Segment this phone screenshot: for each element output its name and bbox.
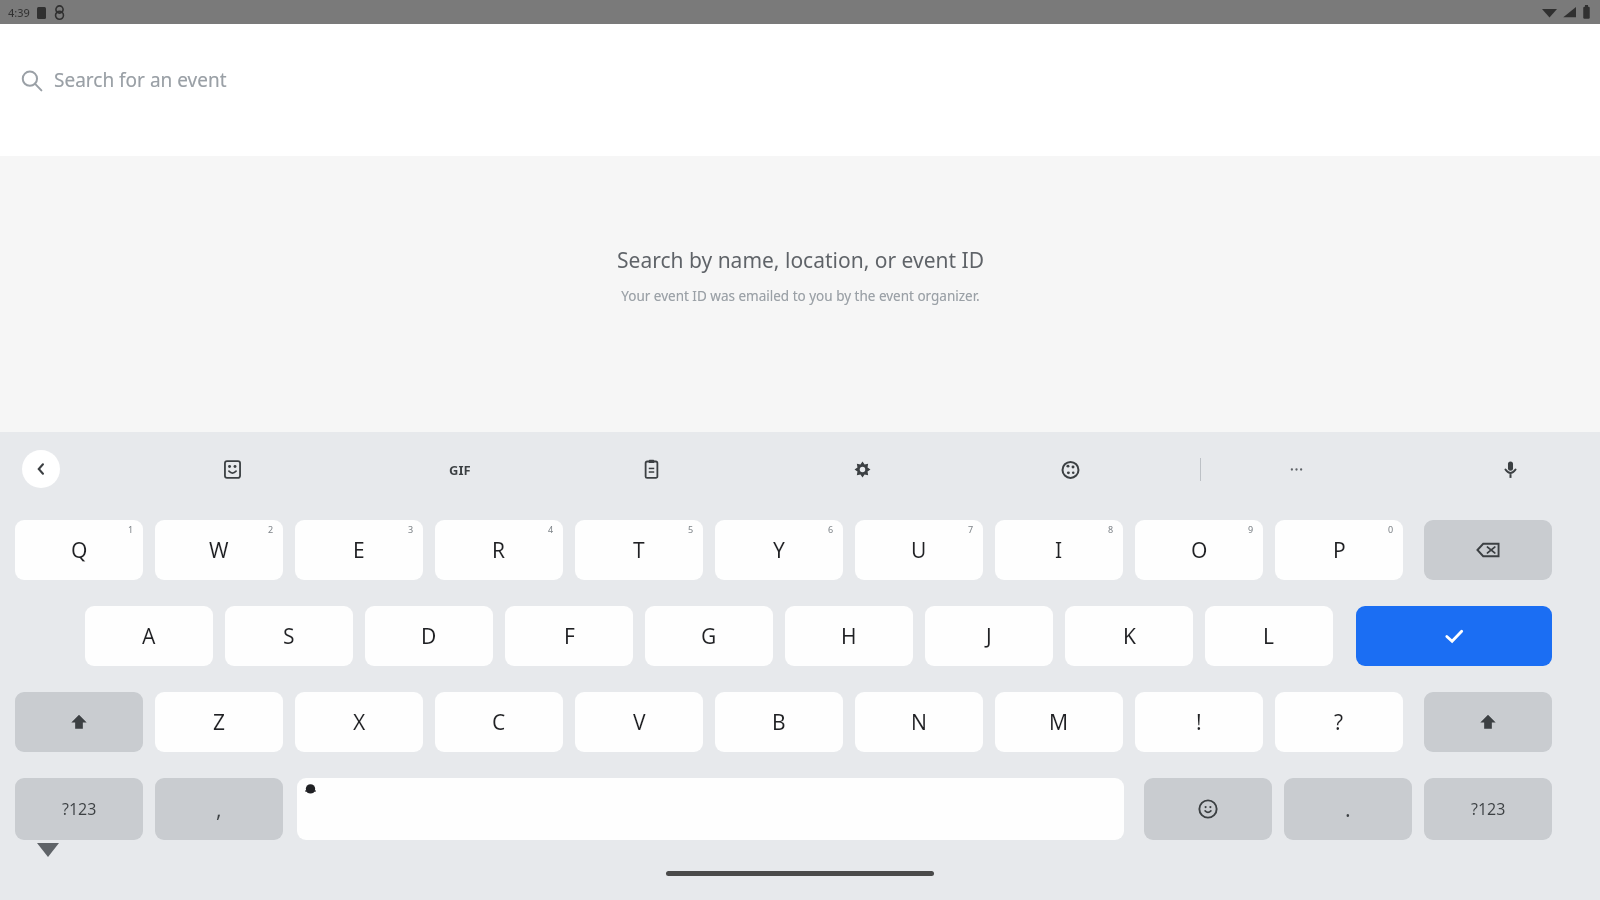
staticText: A	[142, 622, 156, 651]
staticText: 1	[128, 523, 134, 535]
button[interactable]: More options	[1277, 450, 1315, 488]
staticText: O	[1191, 536, 1208, 565]
button[interactable]: N	[855, 692, 983, 752]
button[interactable]: ?123	[15, 778, 143, 840]
staticText: GIF	[449, 461, 471, 479]
button[interactable]: Clipboard	[632, 450, 670, 488]
button[interactable]: V	[575, 692, 703, 752]
staticText: 0	[1388, 523, 1394, 535]
button[interactable]: ?	[1275, 692, 1403, 752]
staticText: P	[1333, 536, 1346, 565]
button[interactable]: Enter	[1356, 606, 1552, 666]
button[interactable]: Q	[15, 520, 143, 580]
button[interactable]: ,	[155, 778, 283, 840]
button[interactable]: O	[1135, 520, 1263, 580]
button[interactable]: U	[855, 520, 983, 580]
staticText: Q	[71, 536, 88, 565]
staticText: W	[209, 536, 229, 565]
staticText: ?	[1334, 708, 1344, 737]
staticText: M	[1049, 708, 1069, 737]
staticText: L	[1263, 622, 1275, 651]
button[interactable]: R	[435, 520, 563, 580]
button[interactable]: A	[85, 606, 213, 666]
staticText: 8	[1108, 523, 1114, 535]
staticText: K	[1123, 622, 1136, 651]
button[interactable]: Shift	[1424, 692, 1552, 752]
button[interactable]: Sticker	[213, 450, 251, 488]
staticText: V	[633, 708, 646, 737]
staticText: E	[353, 536, 365, 565]
staticText: ?123	[62, 798, 97, 820]
staticText: H	[841, 622, 857, 651]
staticText: 9	[1248, 523, 1254, 535]
button[interactable]: C	[435, 692, 563, 752]
staticText: !	[1196, 708, 1202, 737]
button[interactable]: H	[785, 606, 913, 666]
other: Search	[20, 69, 43, 92]
staticText: Z	[213, 708, 226, 737]
staticText: 6	[828, 523, 834, 535]
button[interactable]: K	[1065, 606, 1193, 666]
staticText: ?123	[1471, 798, 1506, 820]
staticText: U	[911, 536, 927, 565]
button[interactable]: X	[295, 692, 423, 752]
button[interactable]: Emoji	[1144, 778, 1272, 840]
button[interactable]: D	[365, 606, 493, 666]
button[interactable]: Back	[22, 450, 60, 488]
staticText: .	[1345, 795, 1351, 824]
staticText: J	[986, 622, 992, 651]
staticText: I	[1055, 536, 1063, 565]
button[interactable]: G	[645, 606, 773, 666]
staticText: Your event ID was emailed to you by the …	[621, 287, 980, 305]
staticText: S	[283, 622, 295, 651]
button[interactable]: L	[1205, 606, 1333, 666]
staticText: T	[633, 536, 645, 565]
button[interactable]: Theme	[1051, 450, 1089, 488]
staticText: N	[911, 708, 927, 737]
button[interactable]: .	[1284, 778, 1412, 840]
button[interactable]: B	[715, 692, 843, 752]
button[interactable]: ?123	[1424, 778, 1552, 840]
button[interactable]: P	[1275, 520, 1403, 580]
staticText: 3	[408, 523, 414, 535]
staticText: F	[564, 622, 575, 651]
button[interactable]: Voice input	[1491, 450, 1529, 488]
staticText: X	[353, 708, 366, 737]
button[interactable]: Y	[715, 520, 843, 580]
button[interactable]: I	[995, 520, 1123, 580]
button[interactable]: Settings	[843, 450, 881, 488]
button[interactable]: Z	[155, 692, 283, 752]
staticText: 7	[968, 523, 974, 535]
button[interactable]: S	[225, 606, 353, 666]
staticText: C	[492, 708, 506, 737]
button[interactable]: Backspace	[1424, 520, 1552, 580]
staticText: R	[492, 536, 506, 565]
staticText: Search by name, location, or event ID	[617, 246, 984, 275]
button[interactable]: Shift	[15, 692, 143, 752]
button[interactable]: M	[995, 692, 1123, 752]
button[interactable]: Search	[0, 24, 1600, 156]
staticText: Search for an event	[54, 67, 227, 93]
staticText: Y	[773, 536, 785, 565]
button[interactable]: F	[505, 606, 633, 666]
button[interactable]: T	[575, 520, 703, 580]
button[interactable]: Space	[297, 778, 1124, 840]
staticText: B	[772, 708, 786, 737]
staticText: ,	[216, 795, 222, 824]
button[interactable]: E	[295, 520, 423, 580]
button[interactable]: GIF	[440, 450, 480, 490]
staticText: 5	[688, 523, 694, 535]
button[interactable]: !	[1135, 692, 1263, 752]
staticText: D	[421, 622, 437, 651]
button[interactable]: W	[155, 520, 283, 580]
staticText: 2	[268, 523, 274, 535]
staticText: 4	[548, 523, 554, 535]
staticText: G	[701, 622, 717, 651]
button[interactable]: J	[925, 606, 1053, 666]
staticText: 4:39	[8, 5, 30, 20]
